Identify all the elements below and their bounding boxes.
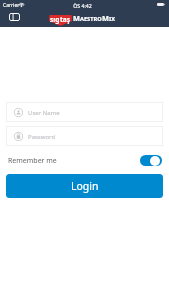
button[interactable]: Password	[6, 126, 163, 146]
staticText: User Name	[28, 109, 60, 117]
button[interactable]: User Name	[6, 102, 163, 122]
staticText: IX	[109, 15, 116, 23]
staticText: ÖS 4:42	[0, 2, 167, 9]
button[interactable]: Login	[6, 174, 163, 198]
staticText: taş	[60, 15, 71, 24]
staticText: Carrier	[3, 2, 20, 9]
staticText: AESTRO	[80, 15, 102, 23]
staticText: M	[102, 13, 109, 23]
staticText: sıg	[50, 15, 60, 24]
staticText: Remember me	[8, 156, 57, 166]
button[interactable]: Menu	[9, 13, 20, 21]
staticText: M	[73, 13, 80, 23]
staticText: Password	[28, 133, 56, 141]
button[interactable]: Remember me toggle	[140, 155, 162, 166]
staticText: Login	[71, 179, 99, 193]
